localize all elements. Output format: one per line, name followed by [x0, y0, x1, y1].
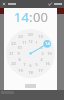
staticText: 12	[28, 39, 33, 44]
staticText: 2	[40, 45, 43, 50]
staticText: 17	[38, 68, 43, 73]
staticText: 8	[18, 57, 21, 62]
staticText: 14	[45, 41, 50, 46]
button[interactable]: Clock face, 14 hours	[6, 29, 55, 78]
staticText: 20	[11, 61, 16, 66]
staticText: 21	[9, 51, 14, 56]
staticText: 3	[41, 51, 44, 56]
staticText: 23	[18, 34, 23, 39]
staticText: 19	[18, 68, 23, 73]
staticText: 18	[28, 70, 33, 75]
staticText: 4	[40, 57, 43, 62]
staticText: 1	[35, 40, 38, 45]
staticText: 22	[11, 41, 16, 46]
staticText: 00	[28, 32, 33, 37]
staticText: 9	[17, 51, 20, 56]
staticText: :	[29, 8, 33, 25]
button[interactable]: 00	[33, 8, 48, 25]
button[interactable]: 14	[14, 8, 29, 25]
staticText: 10	[17, 45, 22, 50]
staticText: 11	[22, 40, 27, 45]
staticText: 7	[23, 62, 26, 67]
staticText: 13	[38, 34, 43, 39]
staticText: 5	[35, 62, 38, 67]
staticText: 16	[45, 61, 50, 66]
button[interactable]: Cancel	[2, 0, 32, 8]
button[interactable]: Done	[32, 0, 62, 8]
staticText: 6	[29, 63, 32, 68]
staticText: 15	[47, 51, 52, 56]
